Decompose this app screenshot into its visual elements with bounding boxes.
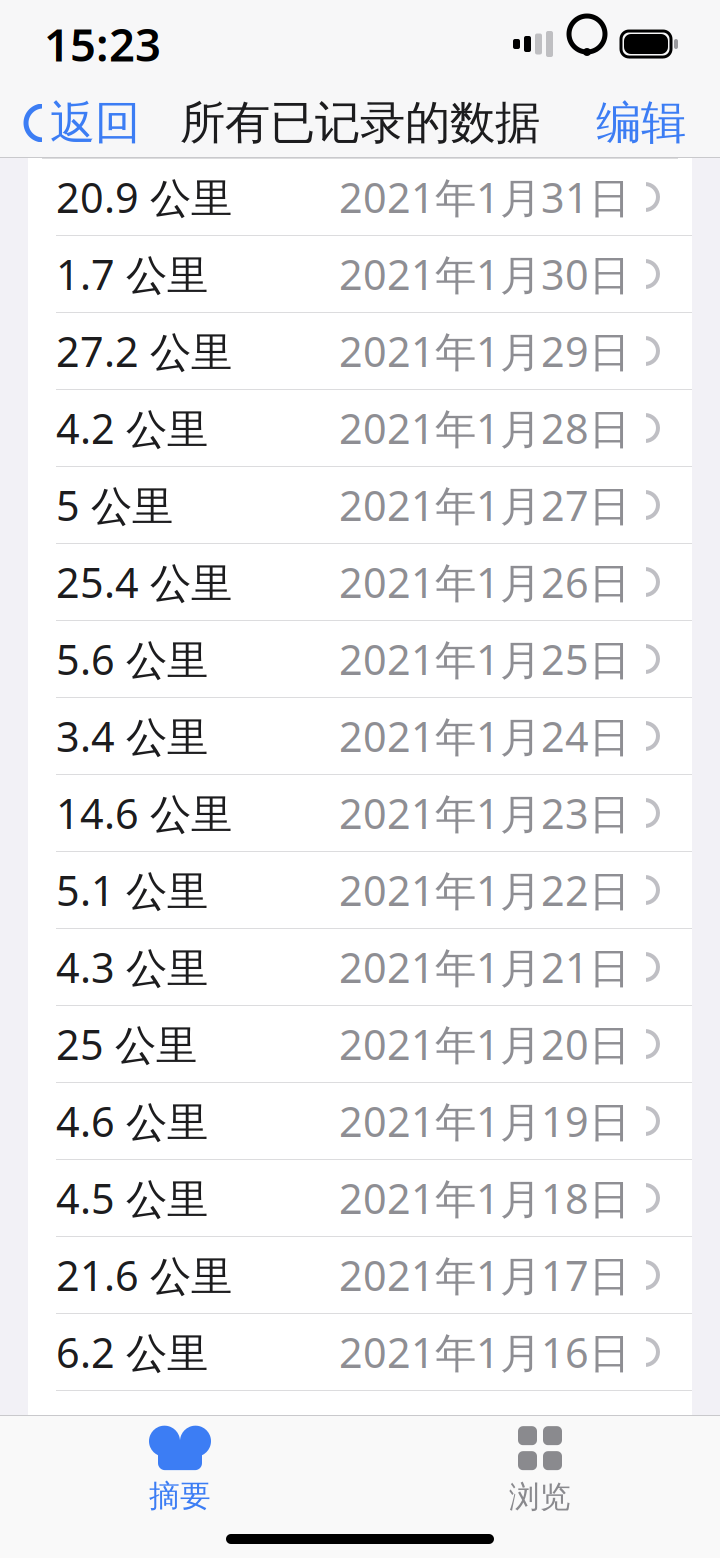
staticText: 2021年1月25日 (339, 632, 630, 686)
staticText: 2021年1月26日 (339, 555, 630, 609)
staticText: 2021年1月24日 (339, 709, 630, 763)
staticText: 2021年1月30日 (339, 247, 630, 301)
staticText: 4.3 公里 (56, 940, 208, 994)
button[interactable]: 4.5 公里 (28, 1160, 692, 1237)
staticText: 3.4 公里 (56, 709, 208, 763)
staticText: 1.7 公里 (56, 247, 208, 301)
button[interactable]: 6.2 公里 (28, 1314, 692, 1391)
staticText: 25 公里 (56, 1017, 197, 1071)
staticText: 编辑 (596, 95, 686, 151)
button[interactable]: 5.1 公里 (28, 852, 692, 929)
staticText: 2021年1月21日 (339, 940, 630, 994)
staticText: 21.6 公里 (56, 1248, 232, 1302)
staticText: 浏览 (509, 1478, 571, 1516)
button[interactable]: 摘要 (0, 1416, 360, 1526)
button[interactable]: 1.7 公里 (28, 236, 692, 313)
staticText: 27.2 公里 (56, 324, 232, 378)
staticText: 2021年1月28日 (339, 401, 630, 455)
staticText: 返回 (50, 95, 140, 151)
staticText: 5.1 公里 (56, 863, 208, 917)
button[interactable]: 返回 (0, 88, 154, 158)
staticText: 2021年1月19日 (339, 1094, 630, 1148)
staticText: 2021年1月16日 (339, 1325, 630, 1379)
button[interactable]: 20.9 公里 (28, 159, 692, 236)
staticText: 2021年1月20日 (339, 1017, 630, 1071)
staticText: 2021年1月23日 (339, 786, 630, 840)
button[interactable]: 编辑 (580, 88, 702, 158)
button[interactable]: 25.4 公里 (28, 544, 692, 621)
button[interactable]: 21.6 公里 (28, 1237, 692, 1314)
button[interactable]: 4.2 公里 (28, 390, 692, 467)
staticText: 5.6 公里 (56, 632, 208, 686)
button[interactable]: 3.4 公里 (28, 698, 692, 775)
button[interactable]: 4.3 公里 (28, 929, 692, 1006)
staticText: 5 公里 (56, 478, 173, 532)
staticText: 摘要 (149, 1477, 211, 1515)
staticText: 4.6 公里 (56, 1094, 208, 1148)
staticText: 4.5 公里 (56, 1171, 208, 1225)
button[interactable]: 5.6 公里 (28, 621, 692, 698)
staticText: 20.9 公里 (56, 170, 232, 224)
staticText: 2021年1月18日 (339, 1171, 630, 1225)
staticText: 25.4 公里 (56, 555, 232, 609)
staticText: 2021年1月29日 (339, 324, 630, 378)
staticText: 2021年1月22日 (339, 863, 630, 917)
staticText: 4.2 公里 (56, 401, 208, 455)
button[interactable]: 浏览 (360, 1416, 720, 1526)
staticText: 15:23 (44, 14, 161, 74)
button[interactable]: 14.6 公里 (28, 775, 692, 852)
button[interactable]: 25 公里 (28, 1006, 692, 1083)
button[interactable]: 27.2 公里 (28, 313, 692, 390)
staticText: 2021年1月17日 (339, 1248, 630, 1302)
staticText: 2021年1月27日 (339, 478, 630, 532)
button[interactable]: 5 公里 (28, 467, 692, 544)
staticText: 2021年1月31日 (339, 170, 630, 224)
staticText: 14.6 公里 (56, 786, 232, 840)
staticText: 6.2 公里 (56, 1325, 208, 1379)
button[interactable]: 4.6 公里 (28, 1083, 692, 1160)
staticText: 所有已记录的数据 (180, 95, 540, 151)
